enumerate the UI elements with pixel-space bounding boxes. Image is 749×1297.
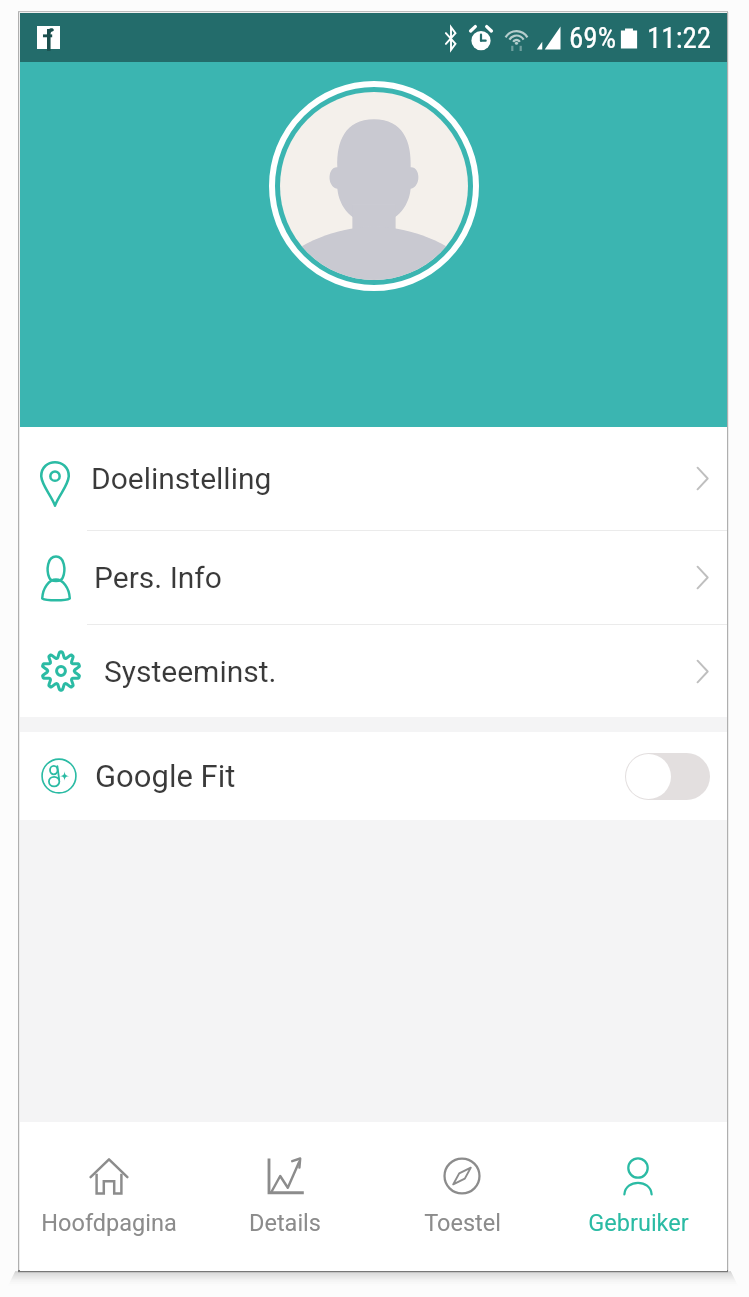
button[interactable]: Details <box>197 1122 373 1271</box>
button[interactable]: Doelinstelling <box>20 427 727 530</box>
staticText: 69% <box>569 21 616 55</box>
button[interactable]: Toestel <box>374 1122 550 1271</box>
staticText: Hoofdpagina <box>41 1209 177 1237</box>
button[interactable]: Facebook notification <box>37 26 60 49</box>
button[interactable]: Google Fit toggle <box>625 753 710 800</box>
staticText: Doelinstelling <box>91 461 272 496</box>
staticText: Pers. Info <box>94 560 222 595</box>
staticText: Details <box>249 1209 321 1237</box>
staticText: Gebruiker <box>588 1209 689 1237</box>
button[interactable]: Google Fit <box>20 732 727 820</box>
staticText: 11:22 <box>647 21 712 55</box>
staticText: Systeeminst. <box>104 654 277 689</box>
button[interactable]: Pers. Info <box>20 531 727 624</box>
button[interactable]: Hoofdpagina <box>21 1122 197 1271</box>
button[interactable]: Profile photo <box>269 81 479 291</box>
staticText: Toestel <box>424 1209 501 1237</box>
staticText: Google Fit <box>95 758 236 794</box>
button[interactable]: Gebruiker <box>550 1122 726 1271</box>
button[interactable]: Systeeminst. <box>20 625 727 717</box>
